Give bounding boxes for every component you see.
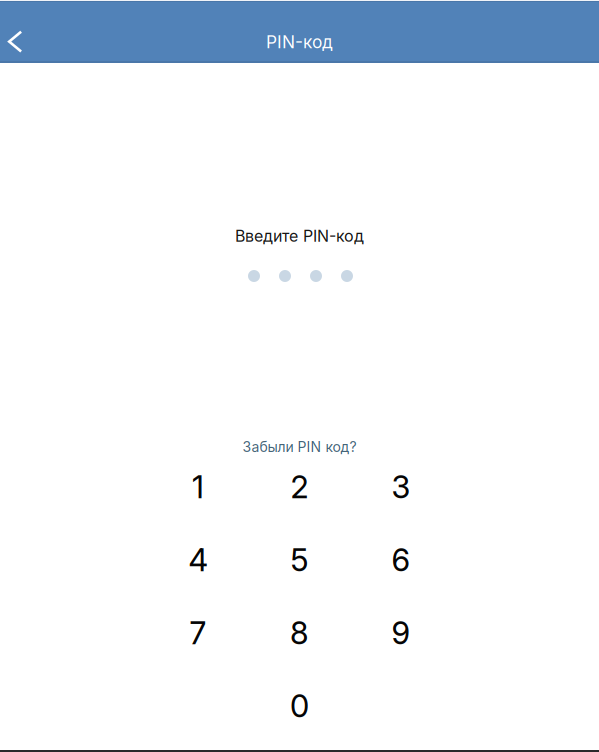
staticText: 6 [391,541,410,578]
button[interactable]: Back [0,20,37,64]
button[interactable]: 4 [147,523,249,596]
staticText: 5 [290,541,308,578]
button[interactable]: 8 [249,596,350,669]
staticText: PIN-код [266,31,333,52]
staticText: 3 [391,468,410,505]
staticText: Введите PIN-код [235,226,364,246]
button[interactable]: 9 [350,596,452,669]
staticText: 4 [188,541,207,578]
button[interactable]: 3 [350,450,452,523]
button[interactable]: 7 [147,596,249,669]
staticText: 9 [391,614,410,651]
staticText: Забыли PIN код? [242,438,356,455]
staticText: 2 [290,468,308,505]
staticText: 8 [290,614,309,651]
staticText: 7 [189,614,206,651]
button[interactable]: Забыли PIN код? [209,432,389,462]
button[interactable]: 0 [249,669,350,742]
button[interactable]: 1 [147,450,249,523]
staticText: 1 [192,468,204,505]
staticText: 0 [290,687,309,724]
button[interactable]: 5 [249,523,350,596]
button[interactable]: 2 [249,450,350,523]
button[interactable]: 6 [350,523,452,596]
